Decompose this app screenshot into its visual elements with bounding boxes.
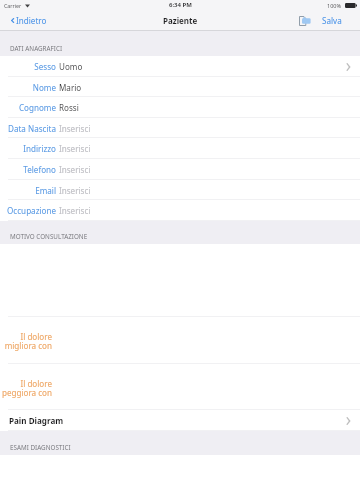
staticText: Indirizzo [23,143,56,154]
button[interactable]: Telefono [0,159,360,180]
staticText: Indietro [16,15,47,26]
staticText: Rossi [59,102,79,113]
staticText: Carrier [4,2,22,9]
staticText: Salva [322,15,342,26]
button[interactable]: Indietro [10,15,47,26]
staticText: Telefono [23,164,56,175]
staticText: Inserisci [59,205,91,216]
staticText: Data Nascita [7,123,56,134]
staticText: Sesso [34,61,56,72]
button[interactable]: Email [0,180,360,200]
button[interactable]: Sesso [0,56,360,77]
staticText: 100% [327,2,342,9]
staticText: Mario [59,82,82,93]
staticText: Inserisci [59,143,91,154]
button[interactable]: Pain Diagram [0,410,360,431]
button[interactable]: Il dolore peggiora con [0,364,360,410]
button[interactable]: Il dolore migliora con [0,317,360,364]
button[interactable]: Cognome [0,97,360,118]
staticText: Paziente [163,15,198,26]
staticText: Nome [32,82,56,93]
staticText: Uomo [59,61,83,72]
button[interactable]: Indirizzo [0,138,360,159]
staticText: Inserisci [59,164,91,175]
button[interactable]: Salva [322,15,342,26]
staticText: Pain Diagram [9,415,64,426]
button[interactable]: Data Nascita [0,118,360,138]
staticText: 6:34 PM [169,1,192,9]
button[interactable]: Occupazione [0,200,360,221]
button[interactable]: Export PDF [298,15,312,27]
staticText: Cognome [18,102,56,113]
staticText: Inserisci [59,123,91,134]
button[interactable]: Nome [0,77,360,97]
staticText: Il dolore peggiora con [0,378,52,399]
staticText: DATI ANAGRAFICI [10,44,63,53]
staticText: Inserisci [59,185,91,196]
staticText: Email [35,185,56,196]
staticText: ESAMI DIAGNOSTICI [10,443,71,452]
staticText: Il dolore migliora con [0,331,52,352]
staticText: Occupazione [7,205,56,216]
staticText: MOTIVO CONSULTAZIONE [10,232,88,241]
